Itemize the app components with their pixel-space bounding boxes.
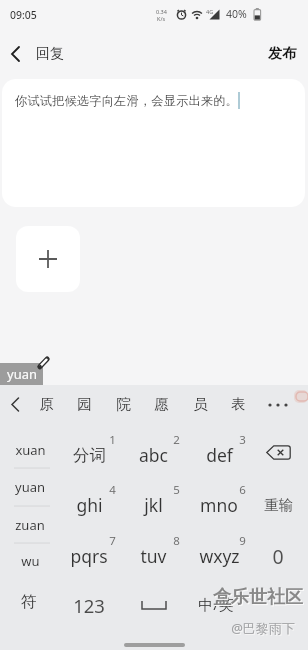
button[interactable]: xuan xyxy=(1,436,59,464)
staticText: abc xyxy=(139,443,168,467)
staticText: 123 xyxy=(73,593,105,618)
button[interactable]: 原 xyxy=(29,390,63,418)
button[interactable] xyxy=(266,445,291,460)
button[interactable]: mno xyxy=(179,491,259,519)
staticText: 表 xyxy=(231,395,246,413)
button[interactable] xyxy=(141,599,167,611)
staticText: 40% xyxy=(226,7,247,21)
button[interactable]: 表 xyxy=(221,390,255,418)
staticText: zuan xyxy=(15,516,45,534)
button[interactable] xyxy=(16,226,80,292)
button[interactable]: jkl xyxy=(113,491,193,519)
staticText: @巴黎雨下 xyxy=(232,620,296,638)
staticText: 6 xyxy=(239,482,246,498)
button[interactable]: ghi xyxy=(49,491,129,519)
staticText: wu xyxy=(21,552,40,570)
staticText: 回复 xyxy=(36,45,64,63)
button[interactable]: 0 xyxy=(238,542,308,570)
staticText: 0 xyxy=(272,543,284,570)
button[interactable]: pqrs xyxy=(49,542,129,570)
button[interactable]: 重输 xyxy=(238,491,308,519)
staticText: 8 xyxy=(173,533,180,549)
button[interactable]: 发布 xyxy=(268,45,296,63)
staticText: mno xyxy=(200,493,238,517)
staticText: 你试试把候选字向左滑，会显示出来的。 xyxy=(15,93,238,108)
staticText: K/s xyxy=(157,15,166,22)
staticText: 盒乐世社区 xyxy=(214,587,304,610)
button[interactable]: 回复 xyxy=(4,30,64,78)
staticText: 中/英 xyxy=(198,594,234,614)
staticText: 9 xyxy=(239,533,246,549)
staticText: yuan xyxy=(7,365,37,383)
button[interactable]: 符 xyxy=(0,588,69,616)
button[interactable]: 员 xyxy=(183,390,217,418)
button[interactable]: tuv xyxy=(113,542,193,570)
staticText: pqrs xyxy=(70,544,108,568)
staticText: 7 xyxy=(109,533,116,549)
staticText: 愿 xyxy=(154,395,169,413)
button[interactable]: 你试试把候选字向左滑，会显示出来的。 xyxy=(2,79,305,207)
staticText: 3 xyxy=(239,432,246,448)
button[interactable]: 愿 xyxy=(144,390,178,418)
staticText: 4G xyxy=(206,8,214,15)
button[interactable]: 分词 xyxy=(49,441,129,469)
button[interactable]: 园 xyxy=(67,390,101,418)
staticText: tuv xyxy=(140,544,167,568)
button[interactable] xyxy=(9,397,22,412)
button[interactable]: wxyz xyxy=(179,542,259,570)
button[interactable]: 123 xyxy=(49,591,129,619)
button[interactable]: wu xyxy=(1,547,59,575)
staticText: 5 xyxy=(173,482,180,498)
staticText: 员 xyxy=(193,395,208,413)
button[interactable]: abc xyxy=(113,441,193,469)
staticText: 原 xyxy=(39,395,54,413)
staticText: 盒乐世社区 xyxy=(213,586,303,609)
staticText: 4 xyxy=(109,482,116,498)
button[interactable]: 中/英 xyxy=(176,590,256,618)
staticText: @巴黎雨下 xyxy=(231,619,295,637)
staticText: 院 xyxy=(116,395,131,413)
staticText: ghi xyxy=(76,493,103,517)
staticText: 0.34 xyxy=(156,8,167,15)
staticText: jkl xyxy=(144,493,163,517)
staticText: xuan xyxy=(15,441,46,459)
button[interactable]: def xyxy=(179,441,259,469)
staticText: 重输 xyxy=(264,496,293,514)
staticText: 发布 xyxy=(268,45,296,63)
staticText: 符 xyxy=(21,592,37,612)
staticText: wxyz xyxy=(199,544,240,568)
button[interactable] xyxy=(266,400,290,410)
staticText: def xyxy=(206,443,233,467)
button[interactable]: 院 xyxy=(106,390,140,418)
staticText: 园 xyxy=(77,395,92,413)
staticText: 分词 xyxy=(73,445,106,466)
button[interactable]: zuan xyxy=(1,511,59,539)
staticText: 09:05 xyxy=(10,8,37,22)
staticText: 1 xyxy=(109,432,116,448)
staticText: 2 xyxy=(173,432,180,448)
button[interactable]: yuan xyxy=(1,473,59,501)
staticText: yuan xyxy=(15,478,45,496)
